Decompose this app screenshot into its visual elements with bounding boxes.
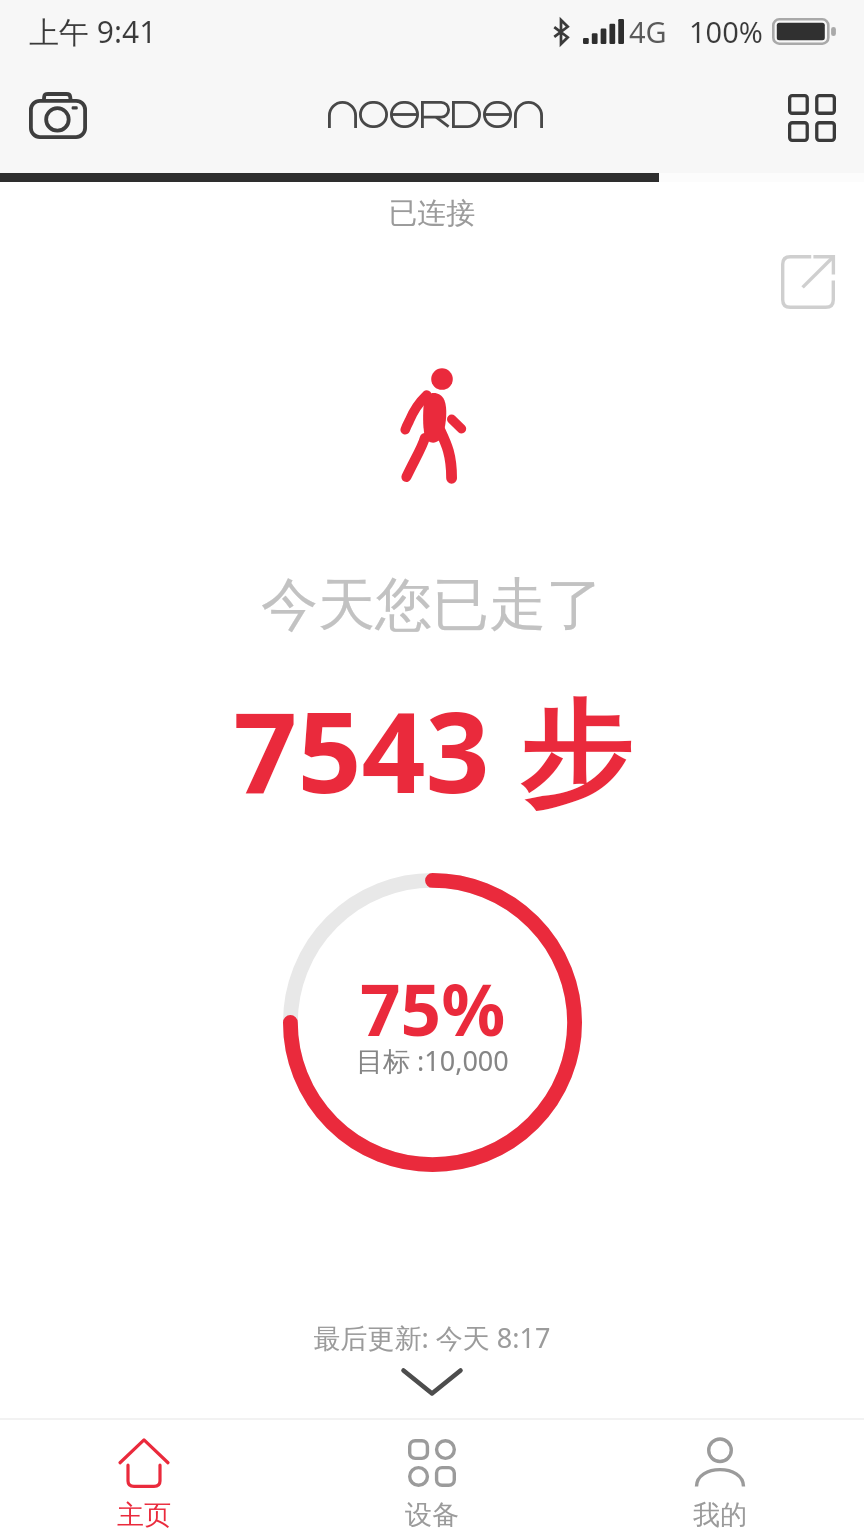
staticText: 已连接 — [0, 195, 864, 232]
staticText: 主页 — [117, 1498, 171, 1532]
staticText: 100% — [689, 12, 763, 51]
button[interactable]: 设备 — [288, 1434, 576, 1536]
staticText: 最后更新: 今天 8:17 — [0, 1319, 864, 1356]
staticText: 4G — [629, 12, 667, 51]
button[interactable]: 主页 — [0, 1434, 288, 1536]
button[interactable]: Grid menu — [769, 75, 855, 161]
staticText: 今天您已走了 — [0, 569, 864, 641]
staticText: 上午 9:41 — [29, 11, 157, 52]
staticText: 7543 步 — [0, 673, 864, 826]
staticText: 设备 — [405, 1498, 459, 1532]
staticText: 我的 — [693, 1498, 747, 1532]
button[interactable]: 我的 — [576, 1434, 864, 1536]
staticText: 75% — [360, 960, 506, 1057]
button[interactable]: Share — [772, 246, 844, 318]
button[interactable]: Camera — [12, 70, 104, 162]
staticText: 目标 :10,000 — [356, 1042, 509, 1079]
